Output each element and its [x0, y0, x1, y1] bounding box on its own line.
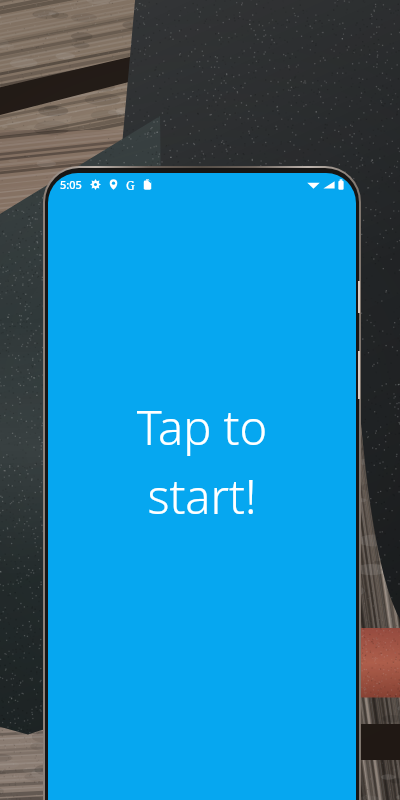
staticText: G	[126, 177, 135, 192]
other: Battery	[338, 179, 344, 190]
staticText: Tap to start!	[48, 395, 356, 528]
other: Signal	[323, 180, 335, 190]
other: Settings	[90, 179, 101, 190]
other: Location	[108, 179, 119, 190]
other: Battery saver	[142, 179, 153, 190]
staticText: 5:05	[60, 177, 82, 192]
other: Wi-Fi	[307, 180, 320, 190]
button[interactable]: 5:05	[48, 173, 356, 800]
